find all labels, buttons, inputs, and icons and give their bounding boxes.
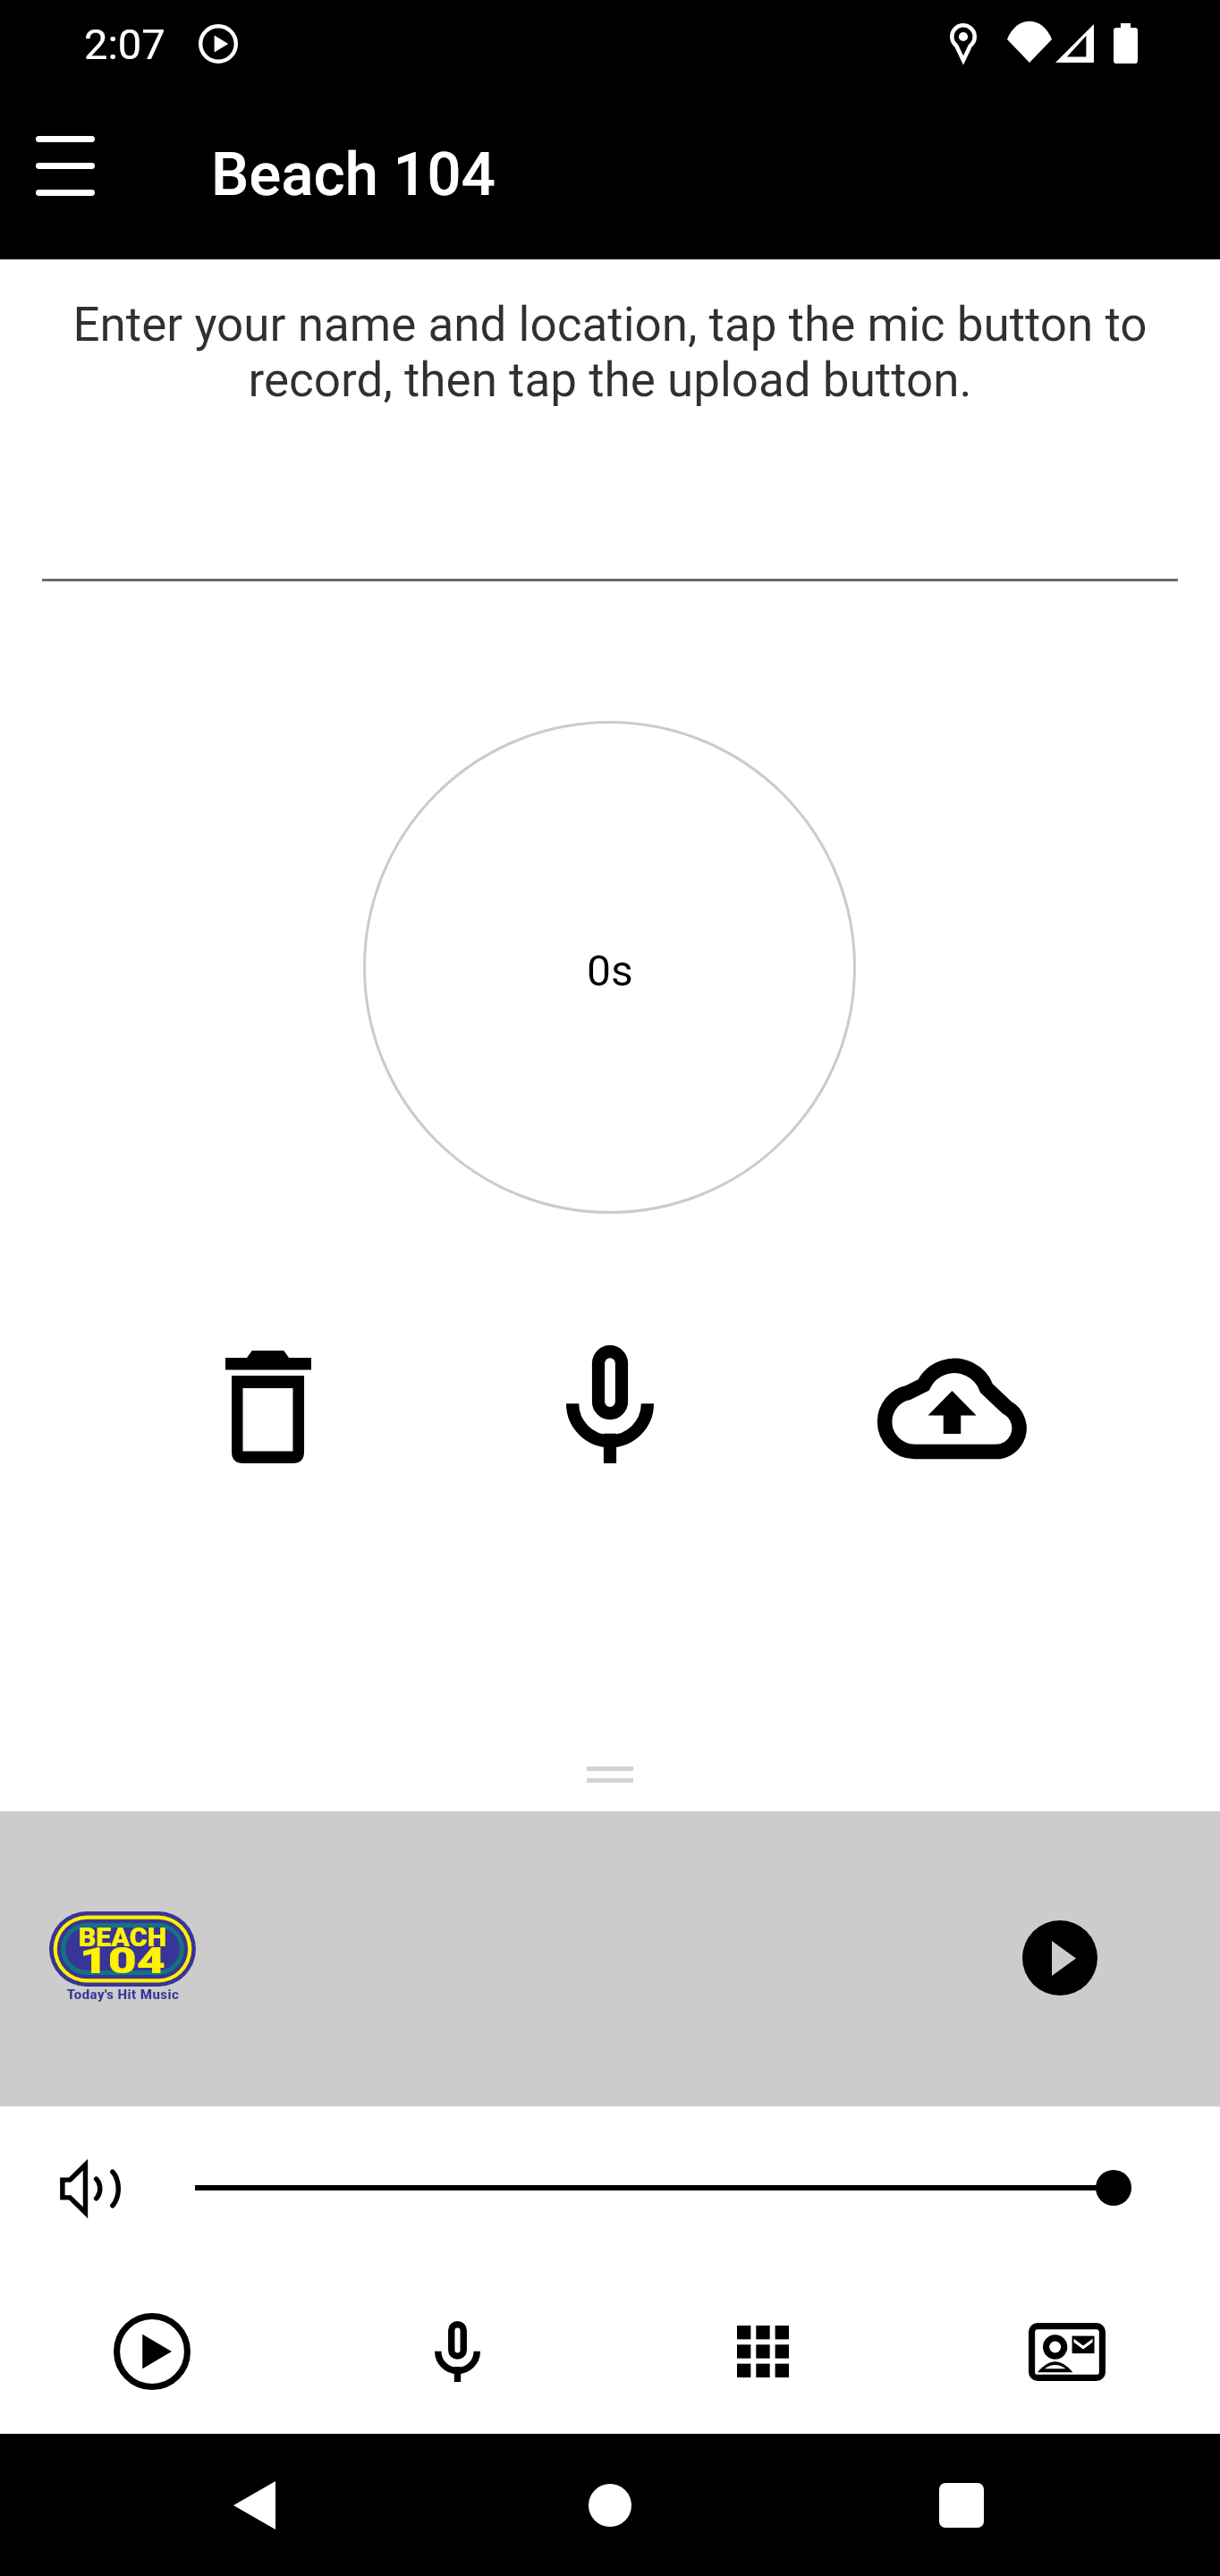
button[interactable]: Home — [521, 2436, 699, 2574]
button[interactable]: Record a message — [368, 2272, 546, 2431]
staticText: Today's Hit Music — [67, 1987, 179, 2003]
button[interactable]: Back — [165, 2436, 343, 2574]
staticText: 0s — [587, 945, 633, 996]
button[interactable]: Delete recording — [179, 1309, 358, 1505]
button[interactable]: Your name and location — [42, 465, 1178, 581]
button[interactable]: Open navigation menu — [16, 116, 114, 215]
button[interactable]: Upload recording — [863, 1311, 1042, 1508]
button[interactable]: Play radio stream — [1022, 1920, 1097, 1996]
button[interactable]: Recent apps — [872, 2436, 1051, 2574]
button[interactable]: Mute — [36, 2138, 143, 2240]
staticText: Beach 104 — [211, 140, 496, 210]
button[interactable]: Volume — [179, 2138, 1163, 2240]
staticText: BEACH — [78, 1922, 167, 1953]
button[interactable]: Record — [521, 1306, 699, 1503]
staticText: Enter your name and location, tap the mi… — [36, 297, 1184, 408]
staticText: 104 — [79, 1940, 166, 1982]
button[interactable]: Contact us — [978, 2272, 1156, 2431]
button[interactable]: More options — [674, 2272, 852, 2431]
staticText: 2:07 — [84, 20, 165, 69]
button[interactable]: Listen live — [63, 2272, 241, 2431]
